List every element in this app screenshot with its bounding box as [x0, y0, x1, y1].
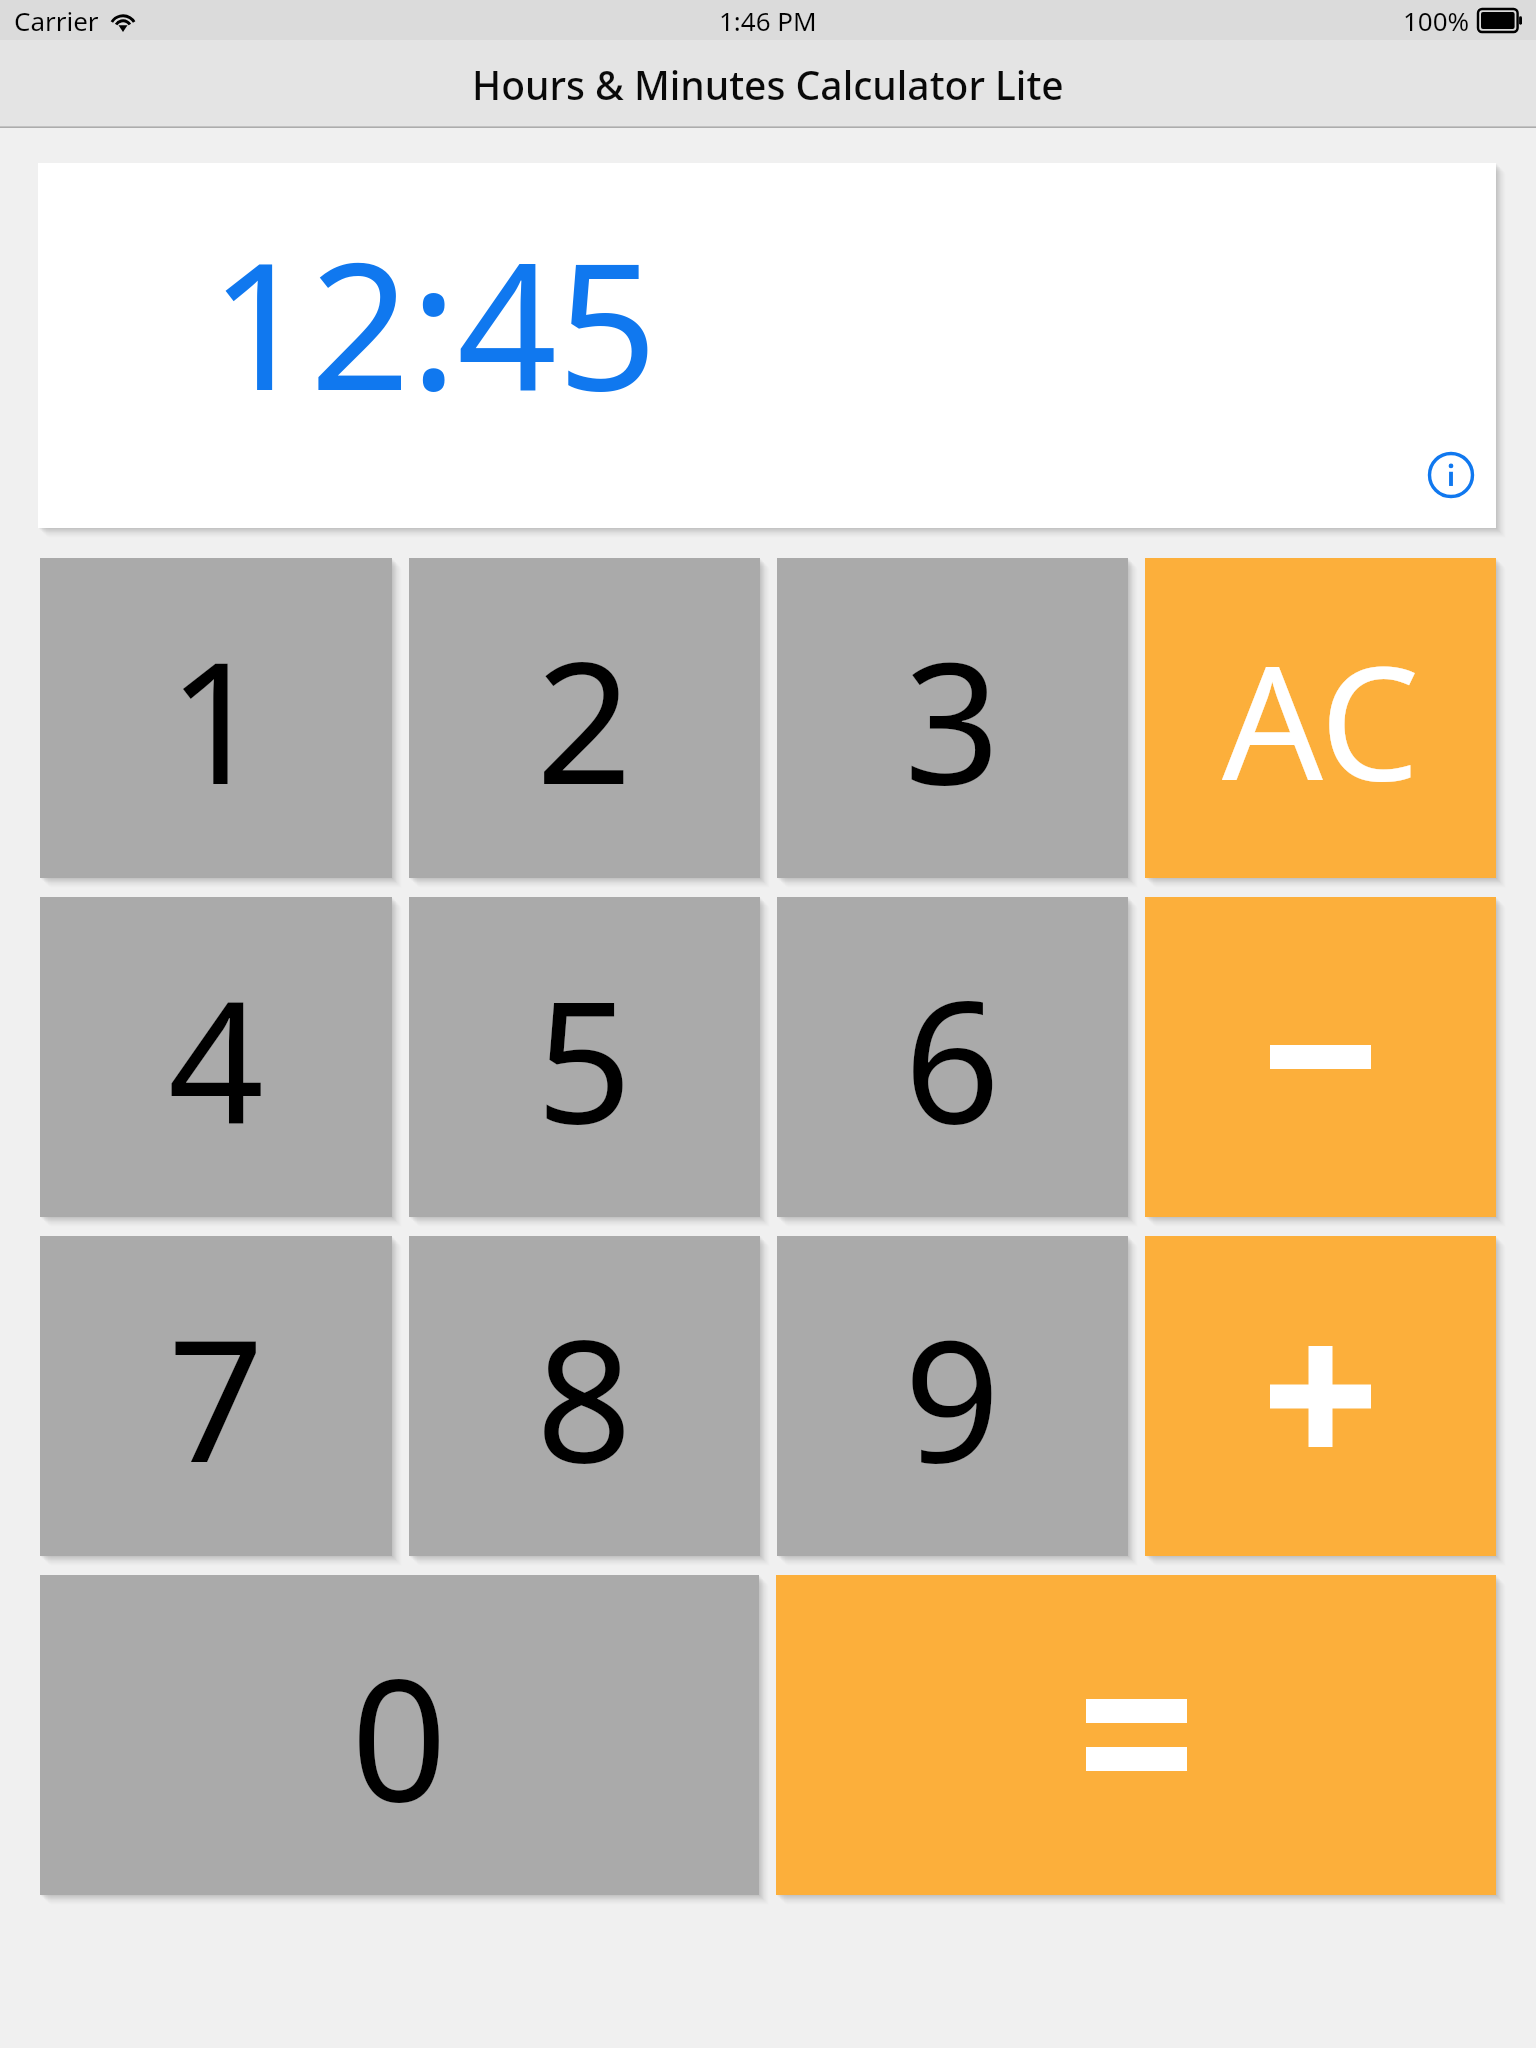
- button[interactable]: All clear: [1145, 558, 1496, 878]
- button[interactable]: 7: [40, 1236, 392, 1556]
- button[interactable]: 3: [777, 558, 1128, 878]
- button[interactable]: 0: [40, 1575, 759, 1895]
- staticText: 6: [904, 943, 1001, 1172]
- button[interactable]: 5: [409, 897, 760, 1217]
- staticText: AC: [1222, 611, 1420, 826]
- button[interactable]: 9: [777, 1236, 1128, 1556]
- staticText: 100%: [1403, 3, 1470, 38]
- button[interactable]: 8: [409, 1236, 760, 1556]
- button[interactable]: Equals: [776, 1575, 1496, 1895]
- button[interactable]: 1: [40, 558, 392, 878]
- button[interactable]: 4: [40, 897, 392, 1217]
- staticText: 8: [536, 1282, 633, 1511]
- staticText: 1: [168, 604, 265, 833]
- staticText: 0: [351, 1621, 448, 1850]
- button[interactable]: Plus: [1145, 1236, 1496, 1556]
- staticText: 2: [536, 604, 633, 833]
- staticText: 3: [904, 604, 1001, 833]
- staticText: 12:45: [210, 203, 658, 441]
- staticText: 7: [168, 1282, 265, 1511]
- button[interactable]: Minus: [1145, 897, 1496, 1217]
- staticText: Hours & Minutes Calculator Lite: [472, 58, 1064, 111]
- staticText: 1:46 PM: [719, 3, 817, 38]
- button[interactable]: Info: [1420, 444, 1482, 506]
- staticText: 4: [168, 943, 265, 1172]
- button[interactable]: 2: [409, 558, 760, 878]
- button[interactable]: 6: [777, 897, 1128, 1217]
- staticText: Carrier: [14, 3, 99, 38]
- staticText: 5: [536, 943, 633, 1172]
- staticText: 9: [904, 1282, 1001, 1511]
